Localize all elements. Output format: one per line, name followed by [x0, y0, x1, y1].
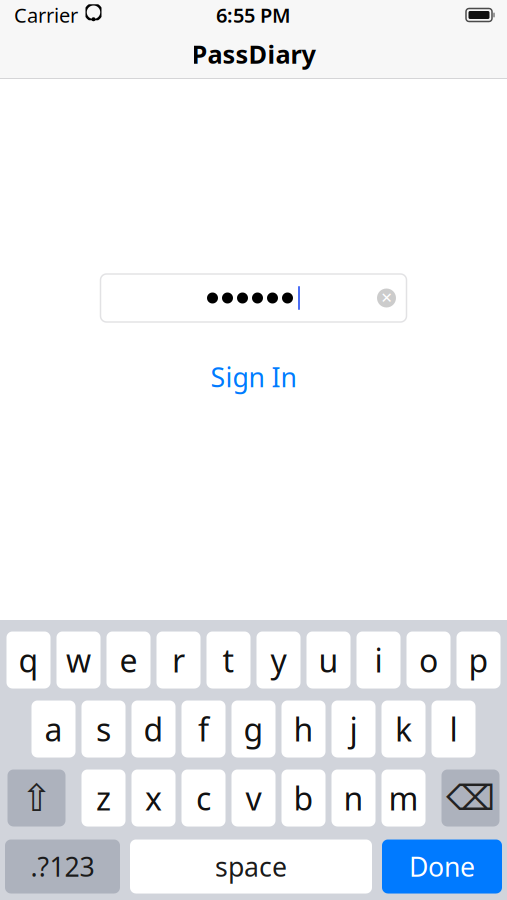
button[interactable]: u [306, 631, 350, 688]
button[interactable]: Done [382, 839, 502, 893]
staticText: Done [409, 849, 475, 884]
staticText: d [143, 708, 163, 750]
button[interactable]: m [381, 769, 425, 826]
button[interactable]: c [181, 769, 225, 826]
staticText: m [388, 777, 418, 819]
button[interactable]: x [131, 769, 175, 826]
staticText: o [419, 639, 438, 681]
staticText: space [215, 849, 287, 884]
button[interactable]: k [381, 700, 425, 757]
button[interactable]: o [406, 631, 450, 688]
button[interactable]: h [281, 700, 325, 757]
staticText: f [198, 708, 209, 750]
button[interactable]: .?123 [5, 839, 120, 893]
staticText: s [96, 708, 111, 750]
staticText: w [66, 639, 91, 681]
staticText: b [293, 777, 313, 819]
staticText: ⇧ [21, 777, 52, 819]
staticText: g [243, 708, 263, 750]
staticText: e [119, 639, 137, 681]
button[interactable]: q [6, 631, 50, 688]
staticText: v [245, 777, 261, 819]
button[interactable]: Shift [7, 769, 65, 826]
staticText: r [172, 639, 185, 681]
staticText: h [293, 708, 313, 750]
staticText: p [468, 639, 488, 681]
staticText: z [96, 777, 111, 819]
staticText: ⌫ [446, 778, 495, 818]
button[interactable]: j [331, 700, 375, 757]
button[interactable]: f [181, 700, 225, 757]
staticText: j [349, 708, 357, 750]
button[interactable]: e [106, 631, 150, 688]
staticText: 6:55 PM [216, 2, 291, 28]
button[interactable]: p [456, 631, 500, 688]
button[interactable]: b [281, 769, 325, 826]
button[interactable]: z [81, 769, 125, 826]
button[interactable]: w [56, 631, 100, 688]
button[interactable]: i [356, 631, 400, 688]
staticText: x [145, 777, 162, 819]
button[interactable]: n [331, 769, 375, 826]
staticText: i [374, 639, 382, 681]
button[interactable]: space [130, 839, 372, 893]
staticText: c [196, 777, 211, 819]
staticText: a [44, 708, 62, 750]
staticText: y [270, 639, 286, 681]
button[interactable]: Clear text [369, 276, 403, 320]
button[interactable]: s [81, 700, 125, 757]
staticText: k [395, 708, 412, 750]
staticText: q [18, 639, 38, 681]
staticText: n [343, 777, 363, 819]
staticText: Carrier [14, 2, 78, 28]
button[interactable]: r [156, 631, 200, 688]
button[interactable]: Delete [441, 769, 499, 826]
button[interactable]: d [131, 700, 175, 757]
button[interactable]: a [31, 700, 75, 757]
button[interactable]: Sign In [0, 362, 507, 392]
button[interactable]: y [256, 631, 300, 688]
button[interactable]: g [231, 700, 275, 757]
staticText: Sign In [210, 359, 296, 395]
staticText: ✕ [380, 290, 392, 306]
button[interactable]: l [431, 700, 475, 757]
staticText: .?123 [30, 849, 94, 884]
staticText: u [318, 639, 338, 681]
button[interactable]: t [206, 631, 250, 688]
staticText: t [222, 639, 234, 681]
button[interactable]: v [231, 769, 275, 826]
staticText: PassDiary [191, 37, 315, 71]
staticText: l [449, 708, 457, 750]
